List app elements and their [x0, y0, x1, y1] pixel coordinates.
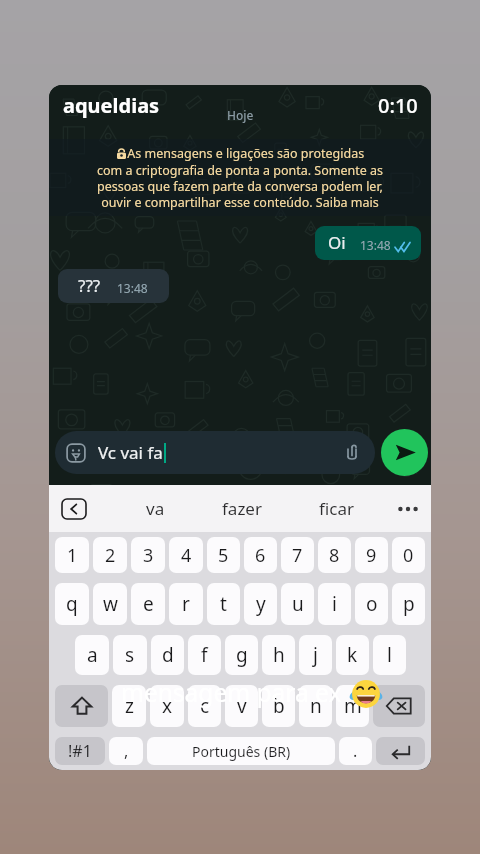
button[interactable]: 2 [93, 537, 127, 573]
button[interactable]: 3 [131, 537, 165, 573]
staticText: As mensagens e ligações são protegidas c… [96, 145, 384, 210]
button[interactable]: t [207, 583, 240, 625]
button[interactable]: y [244, 583, 277, 625]
button[interactable]: d [151, 635, 184, 675]
staticText: w [103, 591, 118, 617]
button[interactable]: h [262, 635, 295, 675]
button[interactable]: s [113, 635, 147, 675]
button[interactable]: 8 [318, 537, 351, 573]
staticText: 13:48 [360, 237, 391, 253]
button[interactable]: p [392, 583, 425, 625]
button[interactable]: ficar [319, 497, 354, 520]
button[interactable]: f [188, 635, 221, 675]
staticText: k [347, 642, 358, 668]
staticText: m [344, 693, 362, 719]
button[interactable]: c [188, 685, 221, 727]
button[interactable]: o [355, 583, 388, 625]
button[interactable]: Back [61, 498, 86, 519]
staticText: ??? [78, 274, 101, 297]
staticText: 2 [105, 543, 116, 568]
staticText: !#1 [68, 740, 92, 762]
button[interactable]: r [169, 583, 203, 625]
button[interactable]: i [318, 583, 351, 625]
button[interactable]: Stickers [55, 431, 375, 474]
button[interactable]: 7 [281, 537, 314, 573]
staticText: 7 [292, 543, 303, 568]
button[interactable]: aqueldias [63, 92, 160, 119]
button[interactable]: ??? [58, 269, 169, 303]
button[interactable]: m [336, 685, 369, 727]
staticText: Português (BR) [192, 742, 291, 761]
button[interactable]: g [225, 635, 258, 675]
staticText: h [273, 642, 285, 668]
staticText: 0:10 [378, 92, 418, 119]
button[interactable]: b [262, 685, 295, 727]
other: Laughing emoji [351, 679, 381, 709]
staticText: 0 [403, 543, 414, 568]
staticText: i [332, 591, 337, 617]
staticText: f [201, 642, 208, 668]
button[interactable]: 4 [169, 537, 203, 573]
other: Attach [342, 443, 362, 463]
staticText: 1 [67, 543, 78, 568]
button[interactable]: Oi [315, 226, 421, 260]
staticText: Hoje [227, 107, 254, 123]
button[interactable]: Send [381, 429, 428, 476]
staticText: e [143, 591, 154, 617]
button[interactable]: e [131, 583, 165, 625]
button[interactable]: u [281, 583, 314, 625]
staticText: 5 [218, 543, 229, 568]
button[interactable]: !#1 [55, 737, 105, 765]
button[interactable]: More [396, 497, 420, 521]
staticText: , [124, 740, 129, 762]
staticText: Oi [328, 231, 346, 254]
staticText: q [66, 591, 78, 617]
button[interactable]: x [150, 685, 184, 727]
button[interactable]: Português (BR) [147, 737, 335, 765]
button[interactable]: As mensagens e ligações são protegidas c… [49, 139, 431, 216]
button[interactable]: n [299, 685, 332, 727]
staticText: t [220, 591, 227, 617]
button[interactable]: va [146, 497, 165, 520]
button[interactable]: 6 [244, 537, 277, 573]
button[interactable]: w [93, 583, 127, 625]
staticText: Vc vai fa [98, 441, 163, 464]
staticText: 8 [329, 543, 340, 568]
staticText: 9 [366, 543, 377, 568]
button[interactable]: . [339, 737, 372, 765]
staticText: p [403, 591, 415, 617]
button[interactable]: j [299, 635, 332, 675]
button[interactable]: v [225, 685, 258, 727]
staticText: y [256, 591, 266, 617]
button[interactable]: 0 [392, 537, 425, 573]
staticText: mensagem para ex [121, 676, 342, 709]
button[interactable]: k [336, 635, 369, 675]
button[interactable]: l [373, 635, 406, 675]
staticText: v [237, 693, 247, 719]
staticText: l [387, 642, 392, 668]
staticText: x [162, 693, 173, 719]
button[interactable] [55, 685, 108, 727]
button[interactable] [373, 685, 425, 727]
staticText: z [125, 693, 134, 719]
button[interactable]: 5 [207, 537, 240, 573]
staticText: j [313, 642, 318, 668]
staticText: 3 [143, 543, 154, 568]
staticText: g [236, 642, 248, 668]
button[interactable] [376, 737, 425, 765]
button[interactable]: 9 [355, 537, 388, 573]
button[interactable]: q [55, 583, 89, 625]
button[interactable]: z [112, 685, 146, 727]
button[interactable]: , [109, 737, 143, 765]
button[interactable]: a [75, 635, 109, 675]
staticText: 6 [255, 543, 266, 568]
staticText: 4 [181, 543, 192, 568]
staticText: d [162, 642, 174, 668]
staticText: . [353, 740, 358, 762]
staticText: u [292, 591, 304, 617]
button[interactable]: 1 [55, 537, 89, 573]
button[interactable]: fazer [222, 497, 262, 520]
staticText: r [182, 591, 190, 617]
staticText: s [125, 642, 135, 668]
other: Stickers [66, 443, 86, 463]
